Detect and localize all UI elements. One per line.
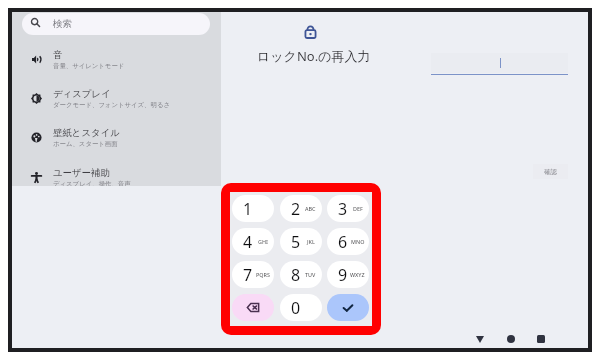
button[interactable]: 3 <box>327 195 369 222</box>
staticText: ディスプレイ、操作、音声 <box>53 180 131 186</box>
staticText: 音量、サイレントモード <box>53 62 125 70</box>
staticText: PQRS <box>256 271 270 278</box>
staticText: GHI <box>258 238 268 245</box>
staticText: DEF <box>353 205 363 212</box>
staticText: 7 <box>243 264 253 286</box>
staticText: 音 <box>53 49 63 61</box>
button[interactable]: 4 <box>232 228 274 255</box>
staticText: 0 <box>291 297 301 319</box>
staticText: 検索 <box>53 18 72 30</box>
button[interactable]: ディスプレイ <box>12 79 221 118</box>
button[interactable]: 1 <box>232 195 274 222</box>
staticText: ユーザー補助 <box>53 167 110 179</box>
staticText: 4 <box>243 231 253 253</box>
button[interactable]: Backspace <box>232 294 274 321</box>
button[interactable]: Confirm <box>327 294 369 321</box>
staticText: ホーム、スタート画面 <box>53 140 118 148</box>
button[interactable]: 音 <box>12 40 221 79</box>
button[interactable]: ユーザー補助 <box>12 158 221 186</box>
staticText: 6 <box>338 231 348 253</box>
staticText: ロックNo.の再入力 <box>257 47 371 65</box>
button[interactable]: 5 <box>280 228 322 255</box>
staticText: ディスプレイ <box>53 88 111 100</box>
button[interactable]: Back <box>468 325 492 353</box>
button[interactable]: 検索 <box>22 13 210 35</box>
button[interactable]: 9 <box>327 261 369 288</box>
staticText: TUV <box>305 271 316 278</box>
staticText: ダークモード、フォントサイズ、明るさ <box>53 101 170 109</box>
button[interactable]: Recents <box>529 325 553 353</box>
button[interactable]: 0 <box>280 294 322 321</box>
button[interactable]: 2 <box>280 195 322 222</box>
staticText: 確認 <box>544 168 557 176</box>
staticText: ABC <box>305 205 316 212</box>
staticText: 9 <box>338 264 348 286</box>
staticText: JKL <box>307 238 315 245</box>
button[interactable]: 6 <box>327 228 369 255</box>
staticText: 5 <box>291 231 301 253</box>
button[interactable]: 7 <box>232 261 274 288</box>
staticText: 8 <box>291 264 301 286</box>
button[interactable]: Home <box>499 325 523 353</box>
button[interactable]: 確認 <box>533 164 568 179</box>
staticText: MNO <box>351 238 365 245</box>
staticText: 2 <box>291 198 301 220</box>
staticText: 1 <box>243 198 253 220</box>
button[interactable]: 8 <box>280 261 322 288</box>
staticText: WXYZ <box>350 271 365 278</box>
staticText: 3 <box>338 198 348 220</box>
button[interactable]: 壁紙とスタイル <box>12 118 221 157</box>
staticText: 壁紙とスタイル <box>53 127 120 139</box>
